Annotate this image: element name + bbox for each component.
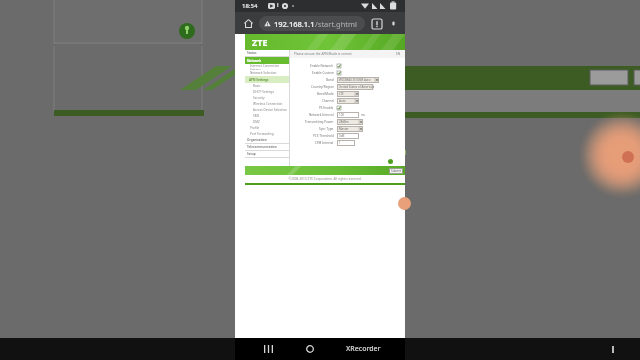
staticText: LTE	[339, 92, 344, 96]
staticText: United States of America	[339, 85, 373, 89]
staticText: Security	[253, 96, 265, 100]
staticText: Transmitting Power	[305, 120, 334, 124]
staticText: Band Mode	[317, 92, 334, 96]
staticText: CFM Interval	[315, 141, 334, 145]
button[interactable]: Home	[240, 15, 256, 31]
button[interactable]: Channel	[290, 97, 405, 104]
staticText: DHCP Settings	[253, 90, 274, 94]
button[interactable]: Transmitting Power	[290, 118, 405, 125]
staticText: APN Settings	[249, 78, 269, 82]
button[interactable]: Band Mode	[290, 90, 405, 97]
button[interactable]: Network	[245, 57, 289, 64]
button[interactable]: Submit	[389, 168, 403, 174]
staticText: Network	[247, 59, 261, 63]
staticText: Sync Type	[319, 127, 334, 131]
staticText: Band	[326, 78, 334, 82]
button[interactable]: Band	[290, 76, 405, 83]
staticText: Internet Connection Setting	[250, 64, 289, 70]
staticText: 1	[339, 141, 341, 145]
staticText: Enable Custom	[312, 71, 334, 75]
button[interactable]: Security	[245, 95, 289, 101]
button[interactable]: Floating assistant	[398, 197, 411, 210]
staticText: WCDMA/LTE/GSM Auto	[339, 78, 371, 82]
staticText: Channel	[322, 99, 334, 103]
staticText: Country/Region	[311, 85, 334, 89]
staticText: /start.ghtml	[315, 19, 358, 29]
button[interactable]: Sync Type	[290, 125, 405, 132]
button[interactable]: PS Enable	[290, 104, 405, 111]
button[interactable]: Port Forwarding	[245, 131, 289, 137]
button[interactable]: More options	[386, 16, 400, 30]
staticText: Auto	[339, 99, 346, 103]
button[interactable]: Basic	[245, 83, 289, 89]
button[interactable]: Organization	[245, 137, 289, 143]
staticText: EN	[396, 52, 401, 56]
staticText: Please ensure the APN Mode is correct	[294, 52, 352, 56]
staticText: Wireless Connection	[253, 102, 283, 106]
button[interactable]: PCS Threshold	[290, 132, 405, 139]
button[interactable]: Home	[300, 339, 320, 359]
button[interactable]: Network Selection	[245, 70, 289, 76]
staticText: PS Enable	[319, 106, 334, 110]
button[interactable]: Access Device Selection	[245, 107, 289, 113]
button[interactable]: APN Settings	[245, 76, 289, 83]
staticText: Network Selection	[250, 71, 277, 75]
staticText: Enable Network	[310, 64, 334, 68]
staticText: Telecommunication	[247, 145, 277, 149]
button[interactable]: Tabs	[369, 16, 384, 31]
button[interactable]: Enable Network	[290, 62, 405, 69]
staticText: Setup	[247, 152, 256, 156]
staticText: Status	[247, 51, 257, 55]
button[interactable]: Status	[245, 50, 289, 56]
staticText: ZTE	[252, 36, 268, 48]
button[interactable]: Country/Region	[290, 83, 405, 90]
staticText: ms	[361, 113, 365, 117]
button[interactable]: Network Interval	[290, 111, 405, 118]
button[interactable]: Wireless Connection	[245, 101, 289, 107]
staticText: 28dBm	[339, 120, 349, 124]
button[interactable]: Profile	[245, 125, 289, 131]
staticText: 100	[339, 113, 344, 117]
button[interactable]: DHCP Settings	[245, 89, 289, 95]
staticText: 192.168.1.1	[274, 19, 315, 29]
button[interactable]: Enable Custom	[290, 69, 405, 76]
button[interactable]: Internet Connection Setting	[245, 64, 289, 70]
staticText: Network Interval	[309, 113, 334, 117]
button[interactable]: Recent apps	[258, 339, 278, 359]
button[interactable]: CFM Interval	[290, 139, 405, 146]
button[interactable]: DMZ	[245, 119, 289, 125]
staticText: 18:54	[242, 2, 258, 10]
staticText: DMZ	[253, 120, 260, 124]
button[interactable]: Help	[388, 159, 393, 164]
staticText: Port Forwarding	[250, 132, 274, 136]
staticText: XRecorder	[346, 344, 381, 354]
button[interactable]: SMS	[245, 113, 289, 119]
staticText: Access Device Selection	[253, 108, 287, 112]
button[interactable]: Setup	[245, 151, 289, 157]
staticText: SMS	[253, 114, 260, 118]
staticText: Basic	[253, 84, 261, 88]
staticText: Profile	[250, 126, 260, 130]
staticText: PCS Threshold	[313, 134, 334, 138]
staticText: Submit	[391, 169, 402, 173]
staticText: 0dB	[339, 134, 345, 138]
staticText: Master	[339, 127, 349, 131]
button[interactable]: Telecommunication	[245, 144, 289, 150]
button[interactable]: 192.168.1.1	[259, 16, 365, 31]
staticText: ©2008-2015 ZTE Corporation. All rights r…	[288, 177, 362, 181]
staticText: Organization	[247, 138, 267, 142]
